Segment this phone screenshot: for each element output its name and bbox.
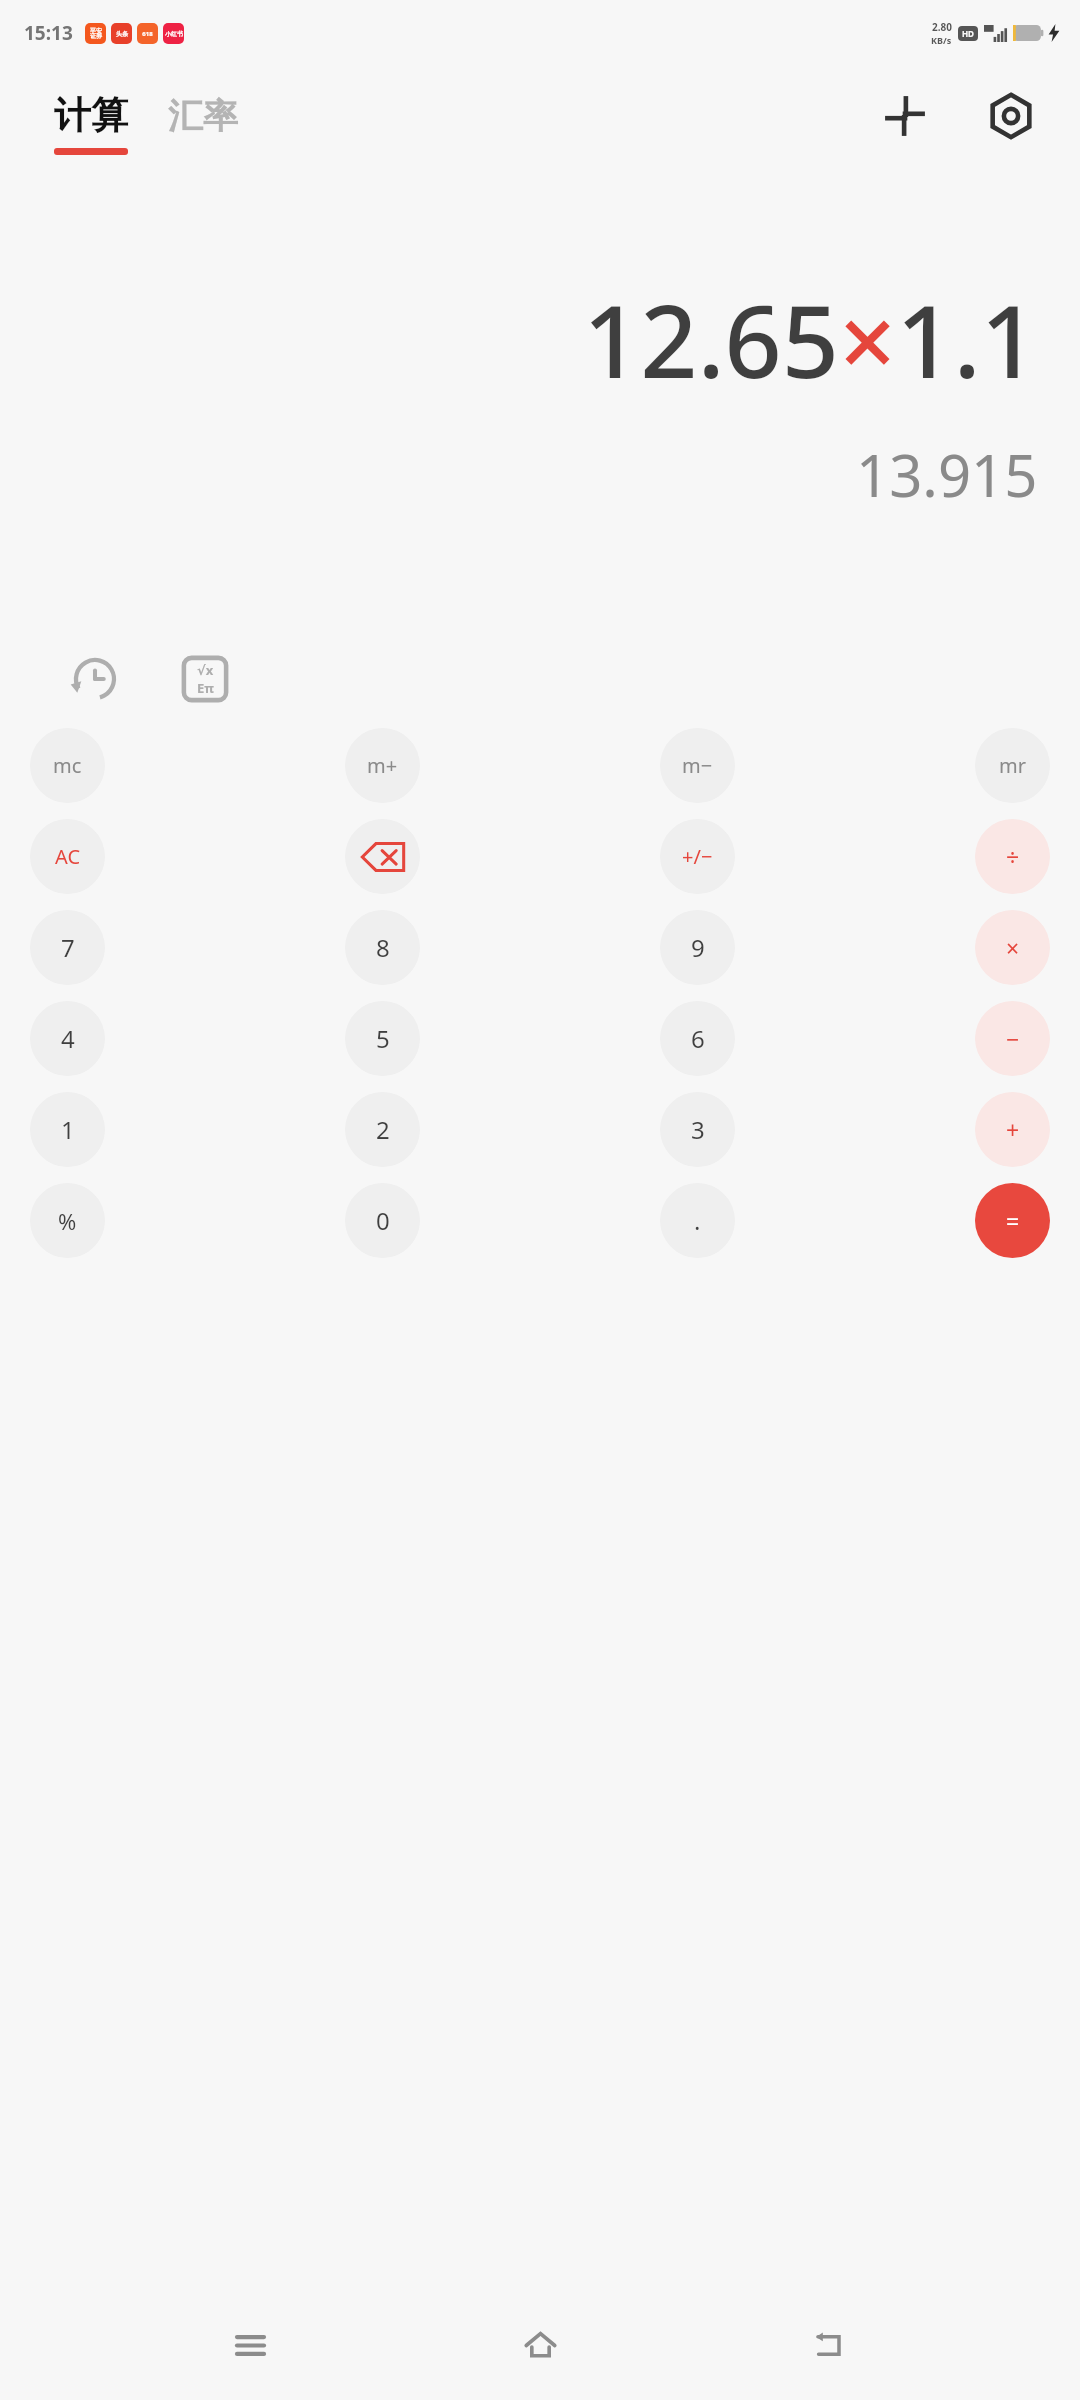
button[interactable]: Scientific — [172, 646, 238, 712]
staticText: 计算 — [54, 92, 128, 139]
staticText: 15:13 — [24, 20, 73, 46]
staticText: HD — [962, 28, 974, 39]
button[interactable]: AC — [30, 819, 105, 894]
button[interactable]: mr — [975, 728, 1050, 803]
staticText: 8 — [376, 931, 390, 964]
staticText: 1 — [61, 1113, 75, 1146]
button[interactable]: % — [30, 1183, 105, 1258]
button[interactable]: 0 — [345, 1183, 420, 1258]
button[interactable]: Home — [500, 2305, 580, 2385]
staticText: 5 — [376, 1022, 390, 1055]
staticText: 12.65×1.1 — [583, 271, 1038, 407]
button[interactable]: 1 — [30, 1092, 105, 1167]
button[interactable]: × — [975, 910, 1050, 985]
staticText: Eπ — [197, 679, 214, 697]
button[interactable]: Collapse — [874, 85, 936, 147]
staticText: KB/s — [931, 34, 952, 46]
button[interactable]: Backspace — [345, 819, 420, 894]
button[interactable]: History — [62, 646, 128, 712]
staticText: 2 — [376, 1113, 390, 1146]
button[interactable]: = — [975, 1183, 1050, 1258]
staticText: √x — [197, 661, 214, 679]
staticText: 4 — [61, 1022, 75, 1055]
staticText: 0 — [376, 1204, 390, 1237]
button[interactable]: 4 — [30, 1001, 105, 1076]
button[interactable]: 2 — [345, 1092, 420, 1167]
button[interactable]: 7 — [30, 910, 105, 985]
button[interactable]: 计算 — [50, 92, 132, 155]
staticText: 小红书 — [165, 30, 183, 38]
button[interactable]: m+ — [345, 728, 420, 803]
staticText: 6 — [691, 1022, 705, 1055]
staticText: . — [694, 1204, 701, 1237]
button[interactable]: 8 — [345, 910, 420, 985]
button[interactable]: 6 — [660, 1001, 735, 1076]
staticText: 头条 — [116, 30, 128, 38]
button[interactable]: m− — [660, 728, 735, 803]
staticText: × — [1006, 932, 1020, 963]
staticText: % — [58, 1206, 77, 1236]
staticText: − — [1006, 1023, 1020, 1054]
staticText: 13.915 — [856, 435, 1038, 514]
staticText: 汇率 — [168, 94, 238, 138]
staticText: + — [1006, 1114, 1020, 1145]
button[interactable]: Settings — [980, 85, 1042, 147]
button[interactable]: +/− — [660, 819, 735, 894]
staticText: mr — [999, 752, 1026, 779]
button[interactable]: mc — [30, 728, 105, 803]
button[interactable]: Back — [790, 2305, 870, 2385]
button[interactable]: + — [975, 1092, 1050, 1167]
staticText: m+ — [367, 752, 398, 779]
staticText: ÷ — [1006, 841, 1020, 872]
button[interactable]: Recents — [210, 2305, 290, 2385]
staticText: 2.80 — [932, 20, 952, 34]
button[interactable]: 3 — [660, 1092, 735, 1167]
staticText: mc — [53, 752, 82, 779]
staticText: +/− — [682, 843, 713, 870]
button[interactable]: 5 — [345, 1001, 420, 1076]
button[interactable]: − — [975, 1001, 1050, 1076]
staticText: 平安 证券 — [90, 27, 102, 40]
staticText: m− — [682, 752, 713, 779]
staticText: 3 — [691, 1113, 705, 1146]
button[interactable]: 汇率 — [164, 102, 242, 146]
button[interactable]: ÷ — [975, 819, 1050, 894]
staticText: = — [1006, 1205, 1020, 1236]
staticText: 7 — [61, 931, 75, 964]
button[interactable]: . — [660, 1183, 735, 1258]
staticText: 618 — [142, 30, 153, 38]
staticText: AC — [55, 843, 81, 870]
button[interactable]: 9 — [660, 910, 735, 985]
staticText: 9 — [691, 931, 705, 964]
